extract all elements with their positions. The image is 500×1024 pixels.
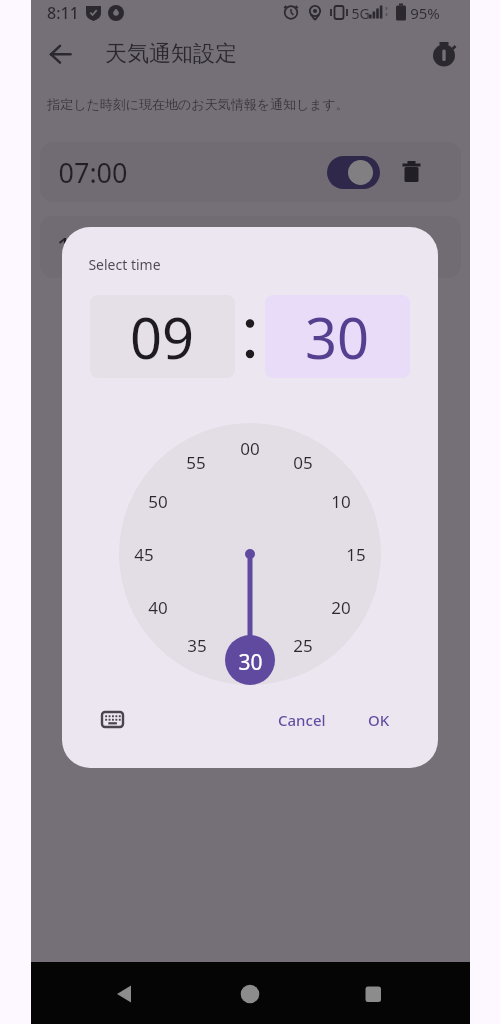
button[interactable]: 12:00: [40, 216, 461, 278]
staticText: 09: [130, 299, 195, 375]
staticText: 12:00: [56, 229, 126, 266]
staticText: 8:11: [47, 2, 79, 24]
staticText: 00: [240, 437, 260, 460]
staticText: 50: [148, 490, 168, 513]
staticText: 30: [305, 299, 370, 375]
staticText: 5G: [351, 4, 370, 23]
staticText: 95%: [410, 3, 440, 23]
staticText: 15: [346, 543, 366, 566]
button[interactable]: 30: [265, 295, 410, 378]
button[interactable]: [235, 979, 265, 1009]
button[interactable]: Cancel: [264, 701, 340, 739]
staticText: 40: [148, 596, 168, 619]
button[interactable]: [430, 41, 458, 69]
staticText: 07:00: [58, 154, 128, 191]
staticText: 天気通知設定: [105, 40, 237, 68]
staticText: 25: [293, 634, 313, 657]
button[interactable]: [44, 40, 74, 70]
button[interactable]: 09: [90, 295, 235, 378]
button[interactable]: [98, 708, 128, 732]
staticText: 35: [187, 634, 207, 657]
staticText: 55: [186, 451, 206, 474]
button[interactable]: [109, 979, 139, 1009]
button[interactable]: [358, 979, 388, 1009]
staticText: Select time: [88, 255, 161, 274]
button[interactable]: [396, 155, 430, 189]
staticText: OK: [368, 710, 390, 730]
staticText: 05: [293, 451, 313, 474]
button[interactable]: [327, 156, 380, 189]
staticText: 10: [331, 490, 351, 513]
button[interactable]: 07:00: [40, 142, 461, 202]
staticText: 45: [134, 543, 154, 566]
button[interactable]: OK: [356, 701, 402, 739]
staticText: 20: [331, 596, 351, 619]
staticText: 30: [238, 648, 263, 672]
staticText: Cancel: [278, 710, 326, 730]
staticText: 指定した時刻に現在地のお天気情報を通知します。: [47, 96, 349, 112]
